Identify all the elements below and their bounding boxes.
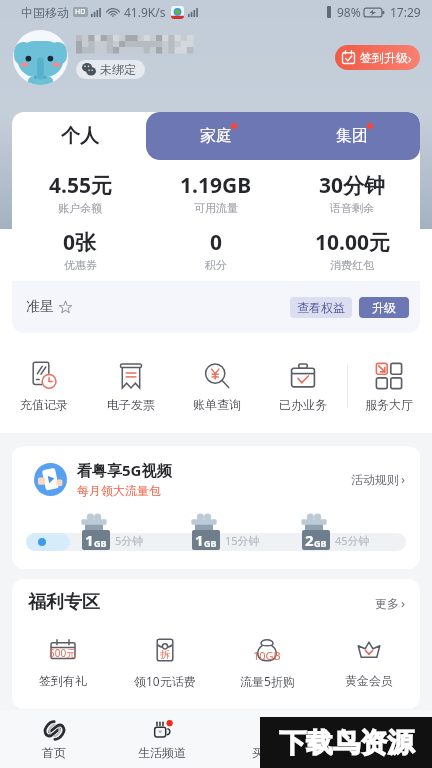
button[interactable]: 30分钟 [284, 171, 420, 215]
staticText: 500元 [49, 646, 77, 660]
button[interactable]: 个人 [12, 112, 148, 160]
staticText: 首页 [42, 745, 66, 760]
staticText: 10.00元 [315, 228, 390, 257]
button[interactable]: 买手机 [216, 710, 324, 768]
staticText: 看粤享5G视频 [77, 460, 172, 480]
staticText: 电子发票 [107, 397, 155, 412]
button[interactable]: 未绑定 [76, 60, 145, 79]
button[interactable]: 10.00元 [284, 228, 420, 272]
staticText: 签到有礼 [39, 673, 87, 688]
staticText: 我的 [366, 745, 390, 760]
button[interactable]: 我的 [324, 710, 432, 768]
staticText: 拆 [160, 648, 170, 661]
staticText: 每月领大流量包 [77, 483, 161, 498]
staticText: GB [314, 537, 327, 549]
button[interactable]: 签到升级 [335, 45, 420, 70]
button[interactable]: 首页 [0, 710, 108, 768]
staticText: 10GB [253, 648, 281, 663]
staticText: 账单查询 [193, 397, 241, 412]
button[interactable]: 升级 [359, 297, 409, 318]
button[interactable]: 查看权益 [290, 297, 352, 318]
staticText: GB [94, 537, 107, 549]
staticText: 优惠券 [64, 258, 97, 272]
button[interactable]: 活动规则 [351, 470, 406, 488]
staticText: 4.55元 [49, 171, 112, 200]
staticText: 可用流量 [194, 201, 238, 215]
button[interactable]: 电子发票 [87, 355, 174, 417]
staticText: 17:29 [390, 4, 421, 20]
staticText: GB [204, 537, 217, 549]
staticText: 5分钟 [115, 533, 144, 548]
staticText: 积分 [205, 258, 227, 272]
staticText: 0张 [63, 228, 97, 257]
button[interactable]: 生活频道 [108, 710, 216, 768]
staticText: 中国移动 [21, 5, 69, 20]
staticText: 查看权益 [297, 300, 345, 315]
staticText: › [401, 594, 406, 612]
staticText: 2 [305, 530, 314, 550]
staticText: 30分钟 [319, 171, 386, 200]
button[interactable]: 500元 [12, 635, 114, 688]
staticText: 98% [337, 4, 361, 20]
staticText: 服务大厅 [365, 397, 413, 412]
staticText: 账户余额 [58, 201, 102, 215]
staticText: 充值记录 [20, 397, 68, 412]
button[interactable]: 更多 [375, 594, 406, 612]
button[interactable]: 10GB [216, 635, 318, 689]
button[interactable]: 集团 [284, 112, 420, 160]
staticText: 买手机 [252, 745, 288, 760]
staticText: 15分钟 [225, 533, 260, 548]
button[interactable]: 已办业务 [260, 355, 346, 417]
staticText: 1 [195, 530, 204, 550]
staticText: 准星 [26, 298, 54, 316]
button[interactable]: 充值记录 [0, 355, 87, 417]
staticText: 消费红包 [330, 258, 374, 272]
button[interactable]: 服务大厅 [346, 355, 432, 417]
button[interactable]: 0张 [12, 228, 148, 272]
button[interactable]: 账单查询 [174, 355, 260, 417]
button[interactable]: 家庭 [148, 112, 284, 160]
staticText: 下载鸟资源 [279, 726, 414, 760]
staticText: 41.9K/s [124, 4, 166, 20]
staticText: 更多 [375, 596, 399, 611]
staticText: 升级 [372, 300, 396, 315]
staticText: 已办业务 [279, 397, 327, 412]
staticText: › [408, 50, 412, 66]
staticText: 1 [85, 530, 94, 550]
button[interactable]: 黄金会员 [318, 635, 420, 688]
staticText: 未绑定 [100, 62, 136, 77]
staticText: 1.19GB [180, 171, 252, 200]
staticText: 45分钟 [335, 533, 370, 548]
staticText: 集团 [336, 126, 368, 146]
staticText: 家庭 [200, 126, 232, 146]
staticText: 领10元话费 [134, 673, 196, 689]
staticText: 0 [210, 228, 223, 257]
staticText: 生活频道 [138, 745, 186, 760]
staticText: 个人 [61, 124, 99, 148]
staticText: › [401, 470, 406, 488]
staticText: 活动规则 [351, 472, 399, 487]
button[interactable]: 4.55元 [12, 171, 148, 215]
staticText: 语音剩余 [330, 201, 374, 215]
staticText: 签到升级 [360, 50, 408, 65]
staticText: 流量5折购 [240, 673, 295, 689]
staticText: 黄金会员 [345, 673, 393, 688]
button[interactable]: 拆 [114, 635, 216, 689]
button[interactable]: 0 [148, 228, 284, 272]
button[interactable]: 1.19GB [148, 171, 284, 215]
staticText: HD [75, 7, 86, 17]
staticText: 福利专区 [28, 591, 100, 614]
